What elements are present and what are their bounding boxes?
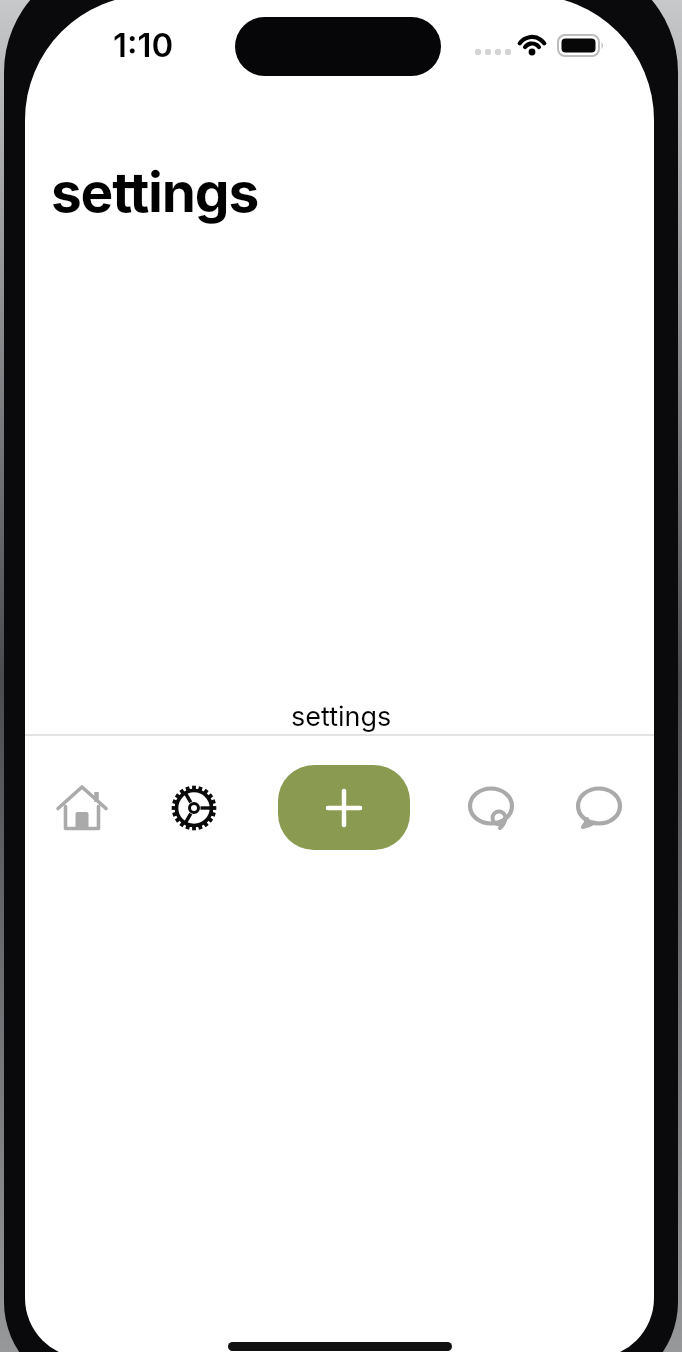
button[interactable] <box>168 782 220 834</box>
staticText: settings <box>51 159 259 226</box>
staticText: 1:10 <box>113 25 174 65</box>
button[interactable] <box>278 765 410 850</box>
button[interactable] <box>573 782 625 834</box>
staticText: settings <box>291 700 392 733</box>
button[interactable] <box>465 782 517 834</box>
button[interactable] <box>56 782 108 834</box>
